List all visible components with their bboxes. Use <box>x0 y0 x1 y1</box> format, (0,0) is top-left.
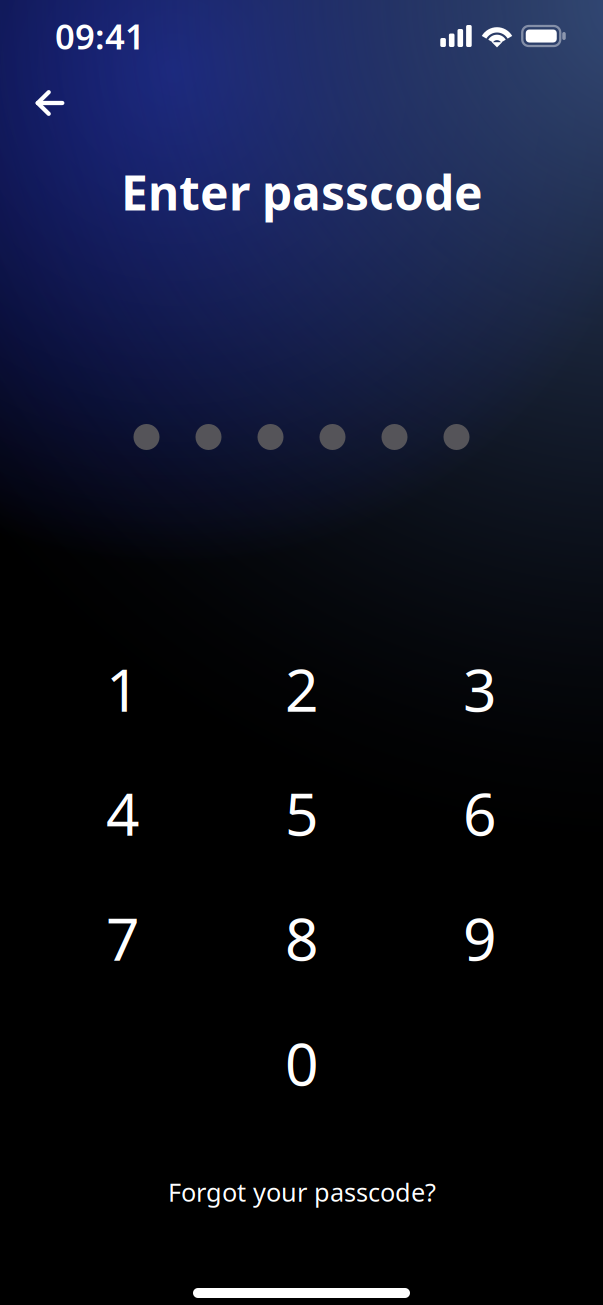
button[interactable]: 6 <box>418 757 542 869</box>
button[interactable]: 7 <box>61 882 185 994</box>
staticText: 4 <box>106 774 140 852</box>
button[interactable]: 8 <box>240 882 364 994</box>
button[interactable]: 3 <box>418 633 542 745</box>
staticText: 8 <box>285 899 319 977</box>
staticText: 5 <box>285 774 319 852</box>
staticText: Forgot your passcode? <box>168 1175 436 1209</box>
staticText: 6 <box>463 774 497 852</box>
staticText: Enter passcode <box>121 160 483 224</box>
staticText: 2 <box>285 650 319 728</box>
button[interactable]: 9 <box>418 882 542 994</box>
staticText: 0 <box>285 1024 319 1102</box>
staticText: 3 <box>463 650 497 728</box>
staticText: 9 <box>463 899 497 977</box>
staticText: 7 <box>106 899 140 977</box>
button[interactable]: 1 <box>61 633 185 745</box>
button[interactable]: Back <box>25 80 75 126</box>
button[interactable]: Forgot your passcode? <box>152 1165 452 1219</box>
button[interactable]: 0 <box>240 1007 364 1119</box>
button[interactable]: 2 <box>240 633 364 745</box>
button[interactable]: 4 <box>61 757 185 869</box>
staticText: 09:41 <box>55 13 145 59</box>
staticText: 1 <box>106 650 140 728</box>
button[interactable]: 5 <box>240 757 364 869</box>
